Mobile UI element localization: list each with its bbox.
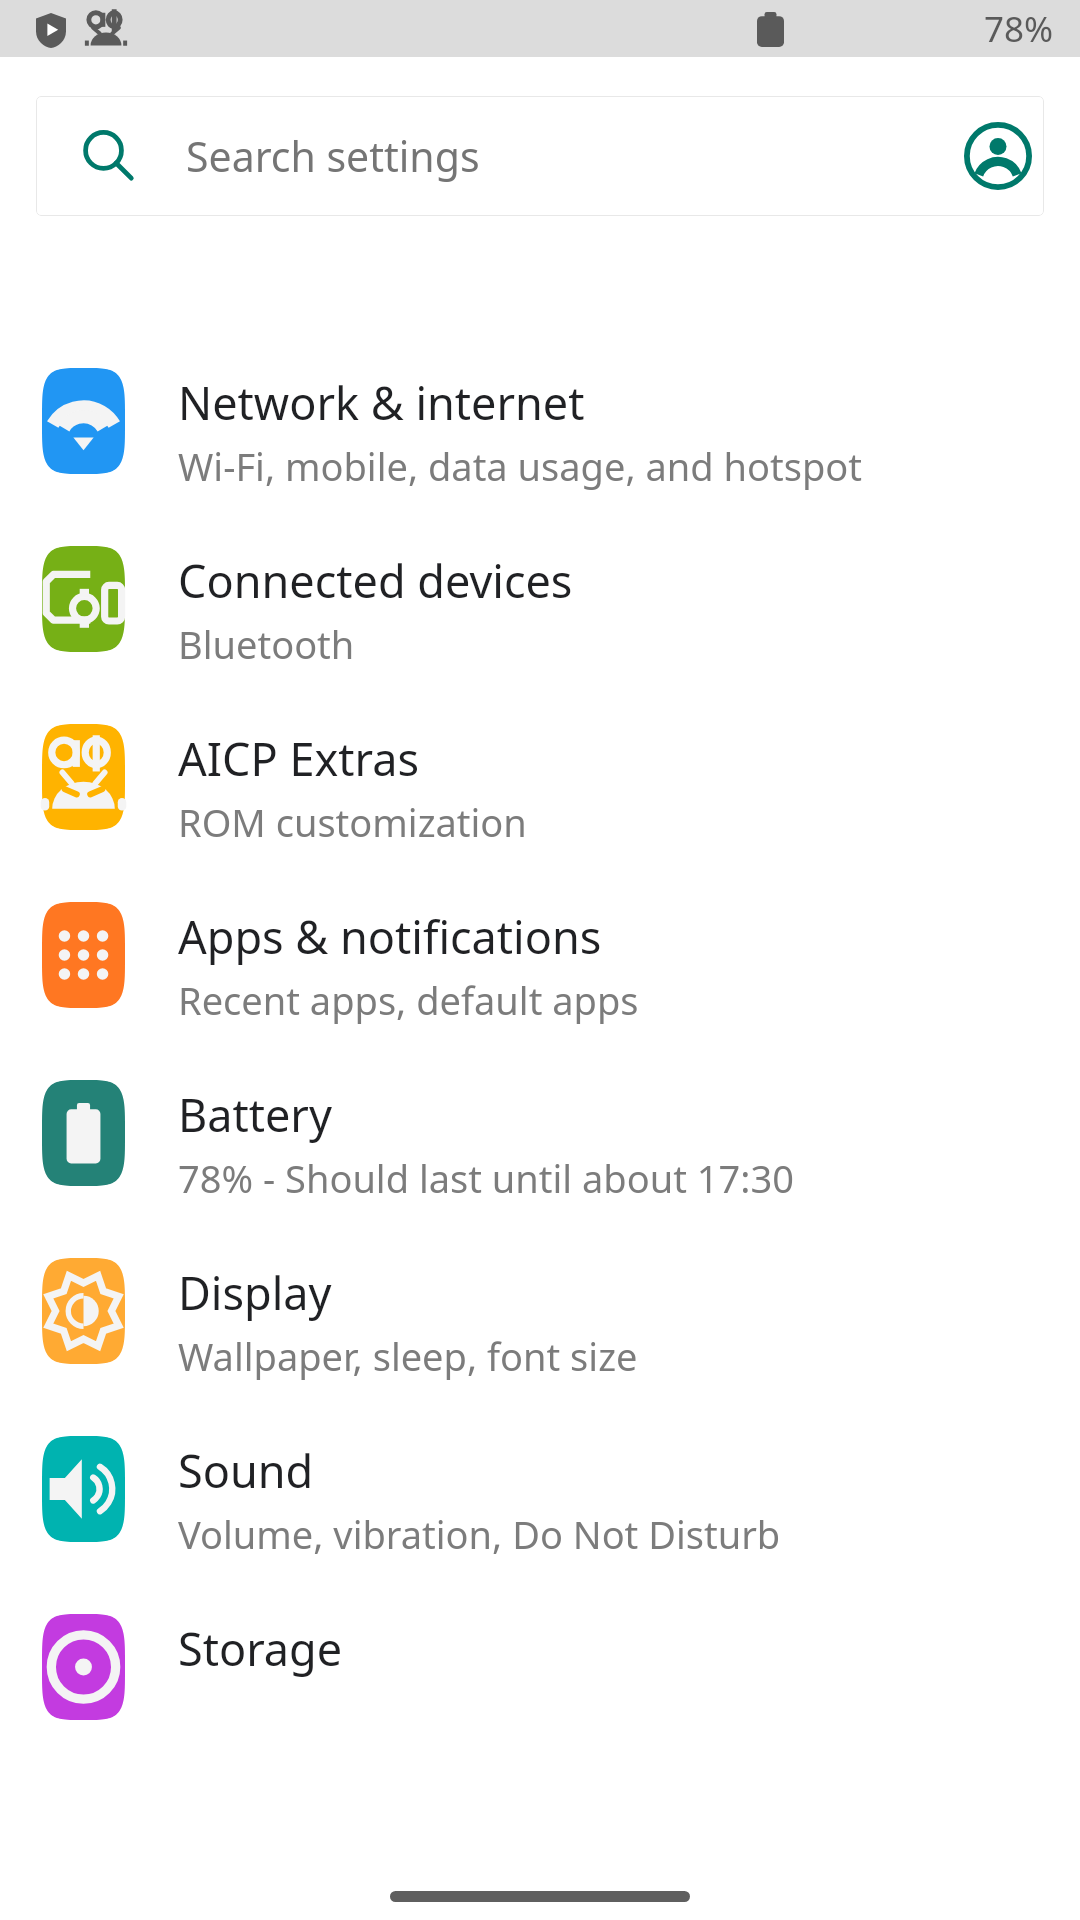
staticText: Connected devices [178, 550, 573, 611]
button[interactable]: Sound [0, 1436, 1080, 1614]
button[interactable]: Search settings [36, 96, 1044, 216]
button[interactable]: Display [0, 1258, 1080, 1436]
staticText: Battery [178, 1084, 332, 1145]
staticText: Storage [178, 1618, 343, 1679]
button[interactable]: Apps & notifications [0, 902, 1080, 1080]
staticText: Volume, vibration, Do Not Disturb [178, 1508, 781, 1560]
button[interactable]: Battery [0, 1080, 1080, 1258]
staticText: 78% [984, 5, 1054, 53]
staticText: Sound [178, 1440, 314, 1501]
staticText: Wi-Fi, mobile, data usage, and hotspot [178, 440, 862, 492]
staticText: Bluetooth [178, 618, 355, 670]
staticText: Search settings [186, 128, 952, 184]
staticText: Display [178, 1262, 332, 1323]
button[interactable]: Connected devices [0, 546, 1080, 724]
staticText: 78% - Should last until about 17:30 [178, 1152, 794, 1204]
button[interactable]: Storage [0, 1614, 1080, 1792]
staticText: Network & internet [178, 372, 585, 433]
staticText: ROM customization [178, 796, 527, 848]
button[interactable]: Account [952, 110, 1044, 202]
staticText: AICP Extras [178, 728, 419, 789]
staticText: Apps & notifications [178, 906, 602, 967]
staticText: Recent apps, default apps [178, 974, 639, 1026]
staticText: Wallpaper, sleep, font size [178, 1330, 638, 1382]
button[interactable]: Network & internet [0, 368, 1080, 546]
button[interactable]: AICP Extras [0, 724, 1080, 902]
